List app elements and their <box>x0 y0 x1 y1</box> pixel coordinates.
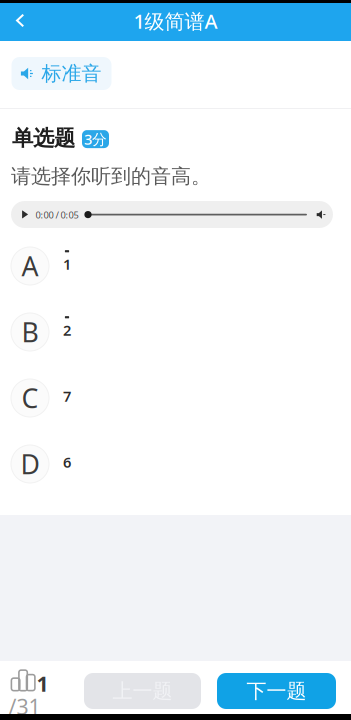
staticText: 3分 <box>84 129 107 149</box>
button[interactable]: Question list <box>0 661 62 714</box>
staticText: 上一题 <box>112 679 172 703</box>
button[interactable]: B <box>0 299 351 365</box>
button[interactable]: Back <box>1 5 39 35</box>
staticText: 0:00 / 0:05 <box>35 209 78 221</box>
staticText: 请选择你听到的音高。 <box>11 164 211 189</box>
button[interactable]: 下一题 <box>217 673 336 709</box>
button[interactable]: 上一题 <box>84 673 201 709</box>
staticText: D <box>20 446 39 482</box>
button[interactable]: C <box>0 365 351 431</box>
staticText: 2 <box>63 320 71 340</box>
staticText: 7 <box>63 386 71 406</box>
staticText: 标准音 <box>41 61 101 86</box>
staticText: C <box>21 380 38 416</box>
staticText: 单选题 <box>12 125 75 151</box>
button[interactable]: A <box>0 233 351 299</box>
staticText: A <box>21 248 38 284</box>
staticText: 6 <box>63 452 71 472</box>
staticText: 1级简谱A <box>133 8 217 34</box>
staticText: 1 <box>63 254 71 274</box>
staticText: 下一题 <box>246 679 306 703</box>
staticText: B <box>21 314 38 350</box>
button[interactable]: 标准音 <box>11 57 111 90</box>
button[interactable]: D <box>0 431 351 497</box>
staticText: /31 <box>8 692 40 720</box>
staticText: 1 <box>36 669 48 698</box>
